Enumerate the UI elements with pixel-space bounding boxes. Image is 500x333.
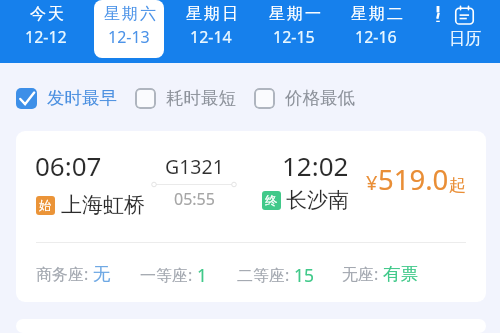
staticText: 12:02 [282, 148, 349, 183]
staticText: 12-15 [273, 26, 315, 48]
staticText: 星期日 [185, 4, 239, 24]
button[interactable]: 今天 [11, 0, 81, 58]
staticText: 星期一 [268, 4, 322, 24]
staticText: 无座: [342, 263, 383, 285]
staticText: 无 [93, 263, 111, 285]
staticText: 价格最低 [285, 87, 355, 109]
staticText: 一等座: [140, 264, 197, 286]
staticText: 1 [197, 263, 208, 287]
staticText: 星期二 [350, 4, 404, 24]
staticText: 终 [265, 193, 278, 209]
staticText: 519.0 [378, 161, 449, 198]
staticText: 12-13 [108, 26, 150, 48]
staticText: 06:07 [35, 148, 102, 183]
button[interactable]: 星期一 [259, 0, 329, 58]
staticText: 12-16 [355, 26, 397, 48]
staticText: 长沙南 [286, 187, 349, 213]
staticText: 商务座: [36, 263, 93, 285]
staticText: 05:55 [174, 188, 215, 210]
staticText: 星期六 [103, 4, 157, 24]
staticText: 有票 [383, 263, 418, 285]
button[interactable]: 06:07 [16, 131, 486, 302]
button[interactable]: 发时最早 [16, 87, 117, 109]
button[interactable]: 价格最低 [254, 87, 355, 109]
button[interactable]: 星期日 [176, 0, 246, 58]
staticText: 始 [39, 198, 52, 214]
staticText: 二等座: [237, 264, 294, 286]
staticText: 发时最早 [47, 87, 117, 109]
staticText: 起 [449, 175, 466, 196]
staticText: 15 [294, 263, 315, 287]
staticText: G1321 [165, 153, 224, 180]
button[interactable]: 耗时最短 [135, 87, 236, 109]
staticText: 12-12 [25, 26, 67, 48]
button[interactable]: 星期二 [341, 0, 411, 58]
staticText: 上海虹桥 [61, 192, 145, 218]
staticText: 耗时最短 [166, 87, 236, 109]
staticText: 12-14 [190, 26, 232, 48]
staticText: 日历 [449, 29, 481, 49]
button[interactable]: 星期六 [94, 0, 164, 58]
staticText: ¥ [366, 169, 378, 196]
staticText: 今天 [29, 4, 65, 24]
button[interactable]: 日历 Calendar [448, 6, 481, 49]
